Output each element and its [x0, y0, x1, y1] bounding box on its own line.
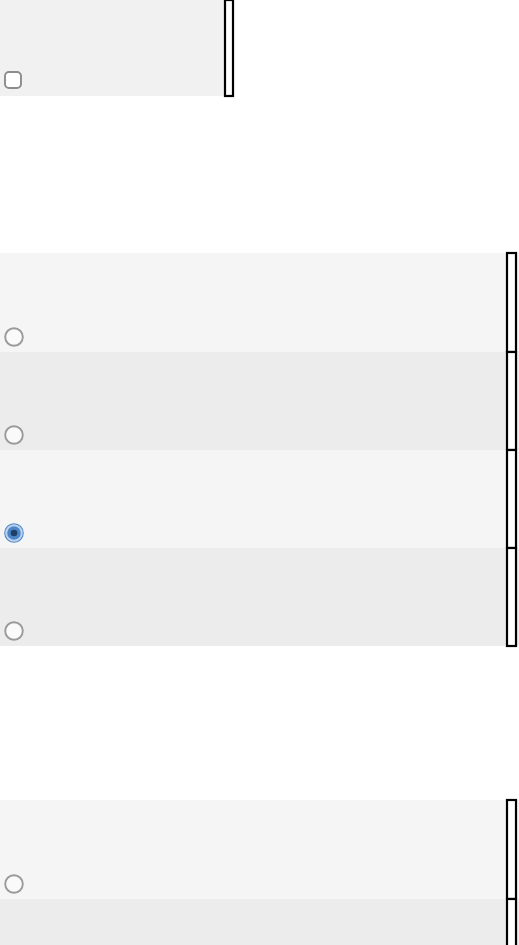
button[interactable]: [0, 899, 519, 945]
button[interactable]: [0, 253, 519, 352]
button[interactable]: [0, 450, 519, 548]
button[interactable]: Select option: [0, 0, 225, 96]
button[interactable]: [0, 800, 519, 899]
other: Select option: [2, 69, 24, 91]
button[interactable]: [0, 352, 519, 450]
button[interactable]: [0, 548, 519, 646]
